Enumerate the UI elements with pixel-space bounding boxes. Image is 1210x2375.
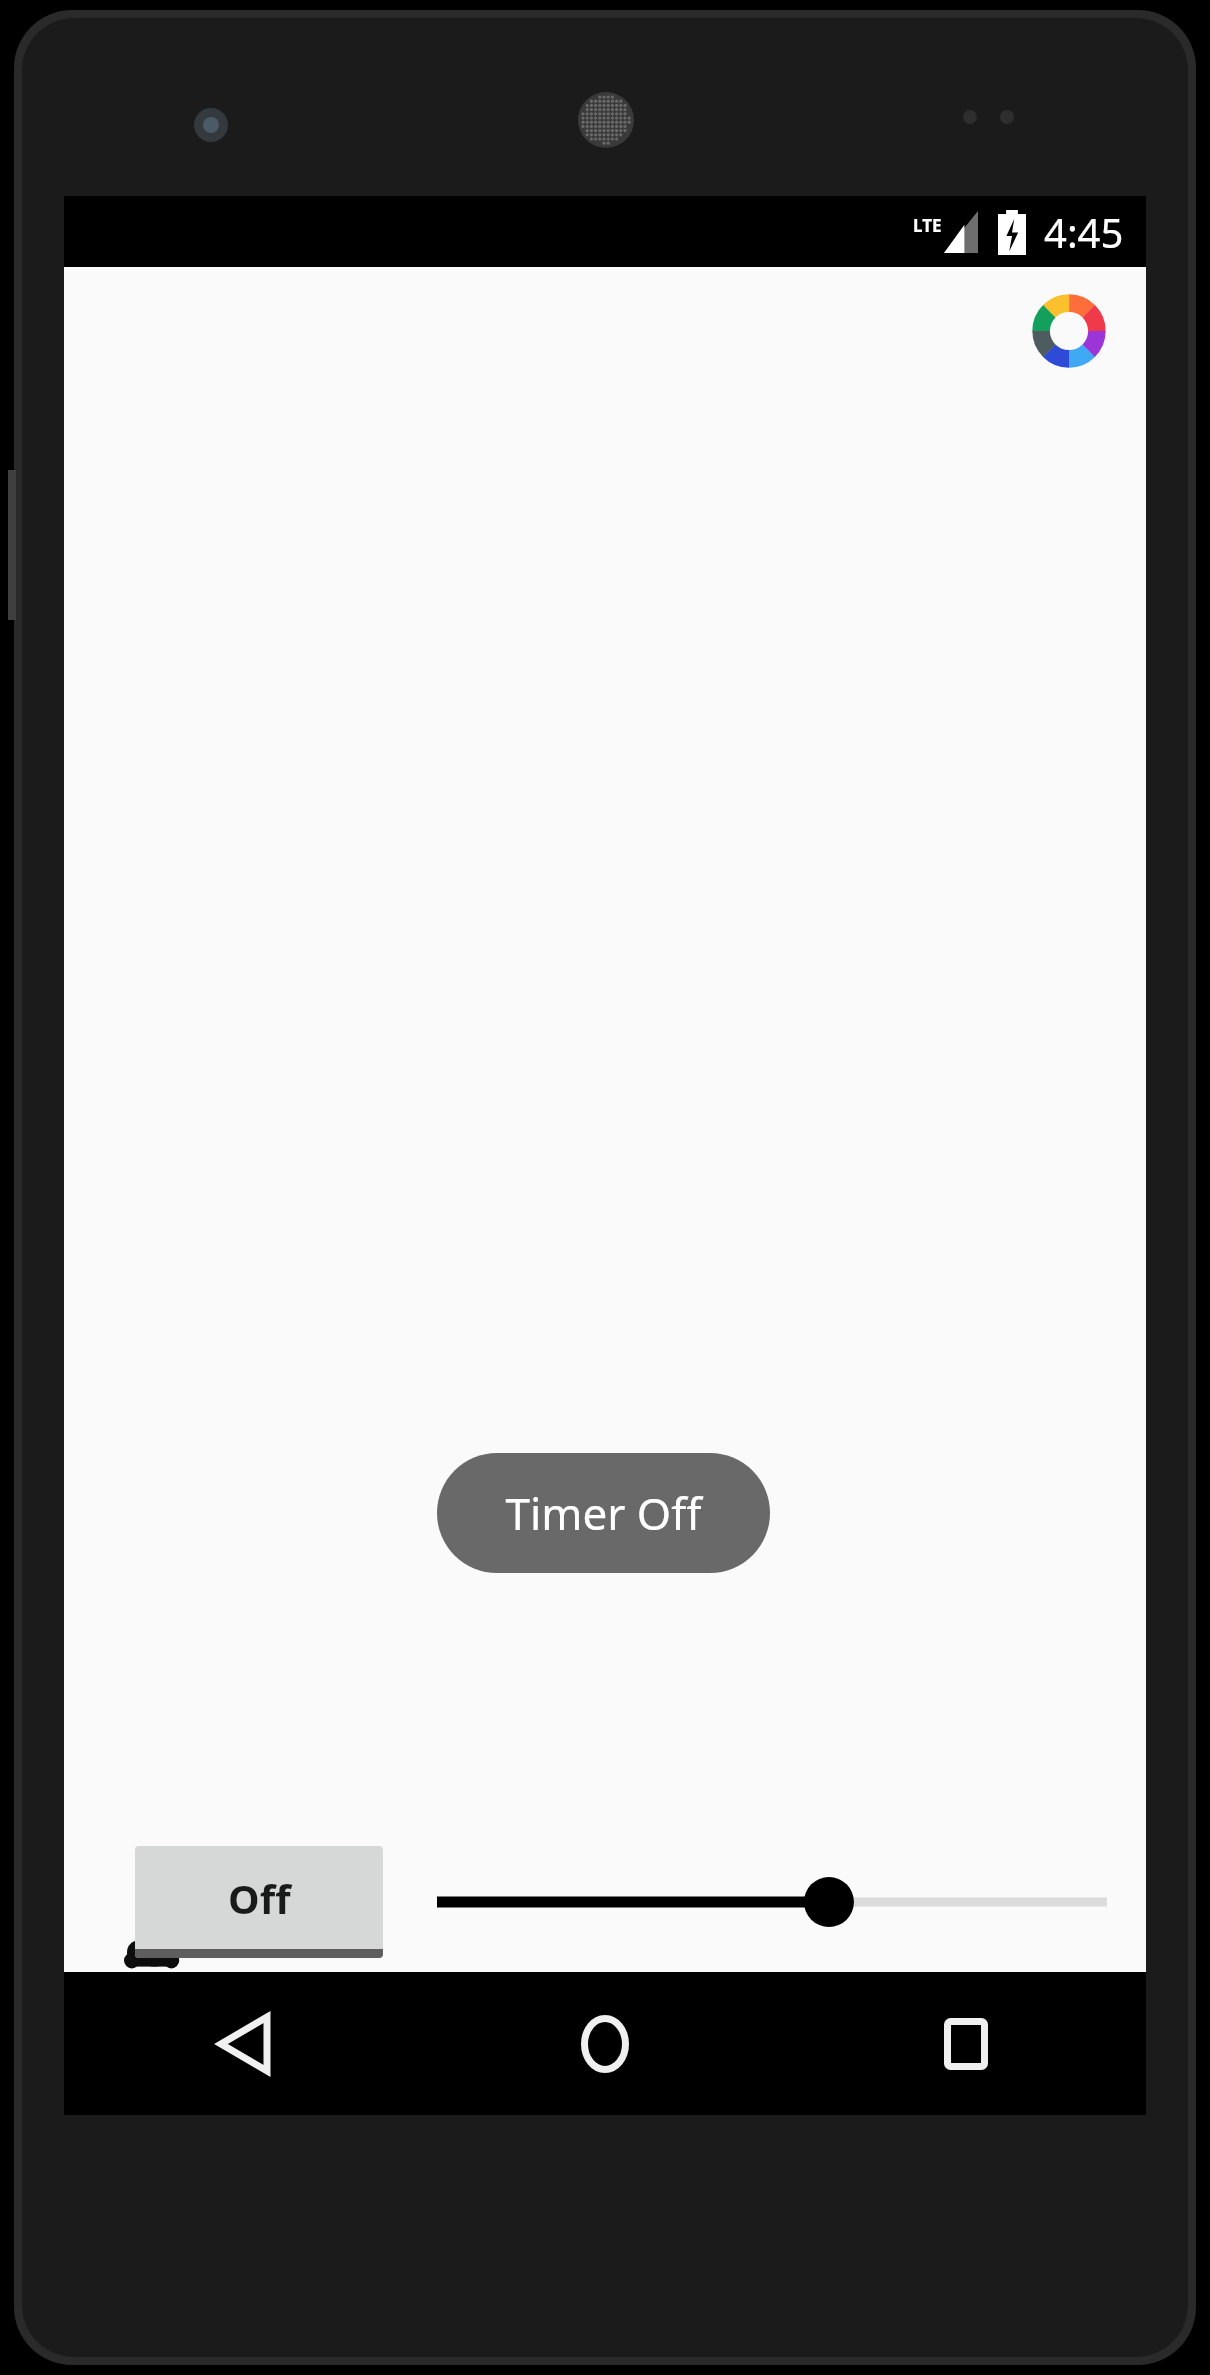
button[interactable]: Choose colour xyxy=(1030,292,1108,370)
button[interactable]: Brightness xyxy=(419,1867,1119,1937)
staticText: Off xyxy=(228,1871,291,1925)
button[interactable]: Timer Off xyxy=(437,1453,770,1573)
staticText: 4:45 xyxy=(1044,205,1124,259)
staticText: LTE xyxy=(913,214,942,237)
button[interactable]: Home xyxy=(424,1972,785,2115)
button[interactable]: Recent apps xyxy=(785,1972,1146,2115)
button[interactable]: Weather xyxy=(121,1915,181,1975)
button[interactable]: Back xyxy=(64,1972,424,2115)
staticText: Timer Off xyxy=(505,1483,702,1543)
button[interactable]: Off xyxy=(135,1846,383,1958)
